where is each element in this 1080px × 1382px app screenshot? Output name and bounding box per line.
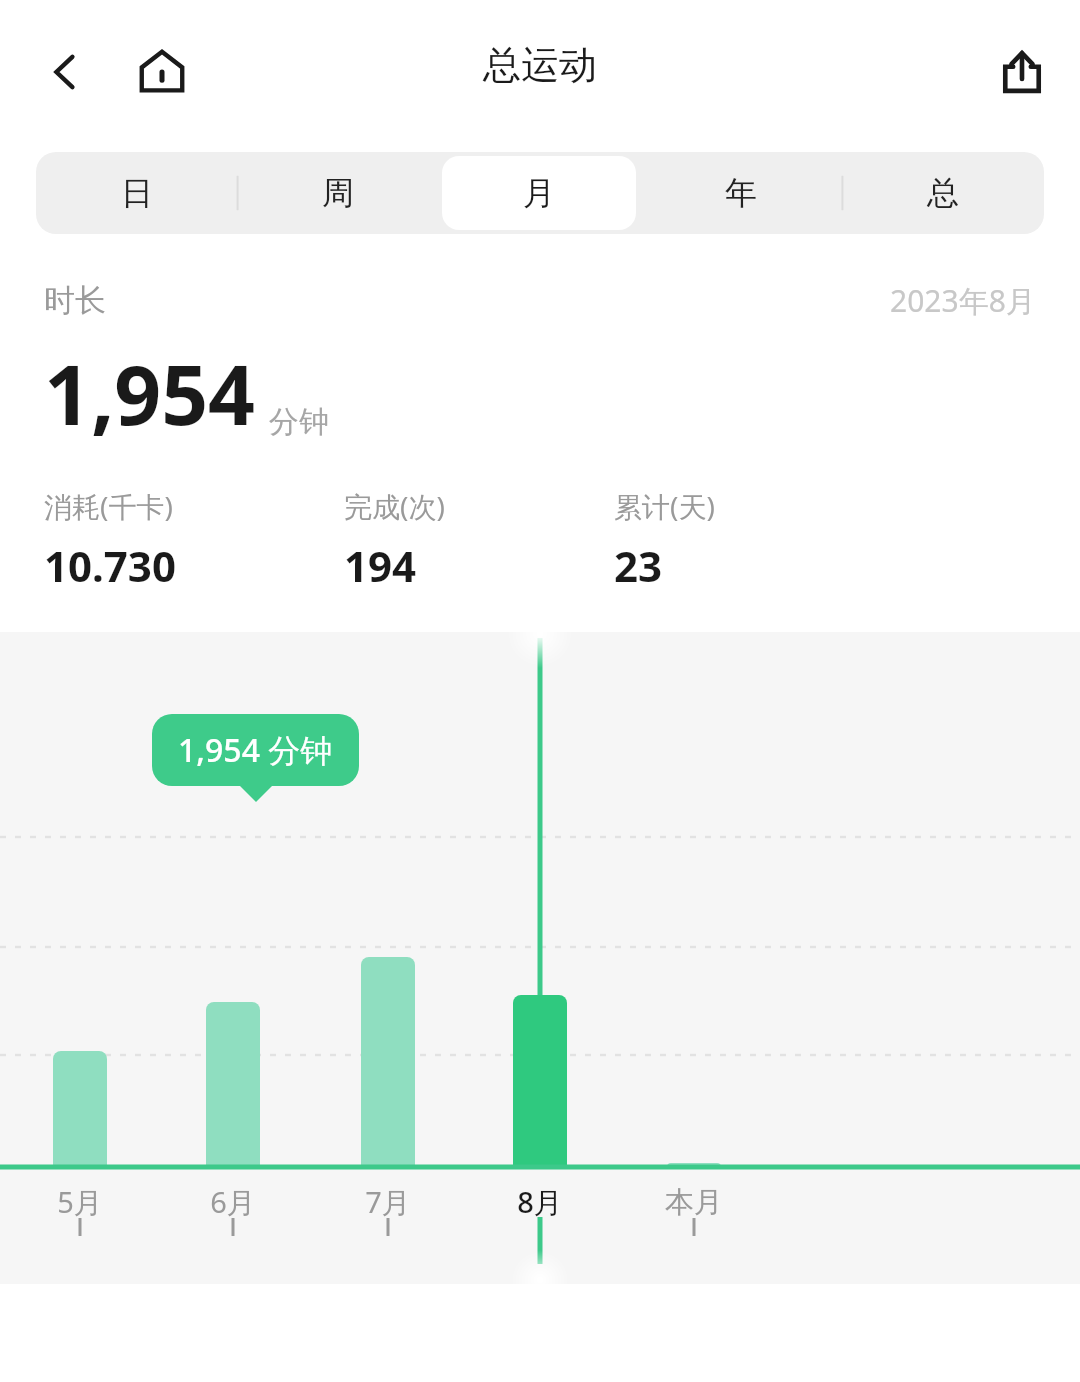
button[interactable]: 8月 [480, 1179, 600, 1225]
staticText: 周 [322, 173, 354, 213]
button[interactable]: Share [986, 36, 1058, 108]
staticText: 总 [927, 173, 959, 213]
staticText: 5月 [57, 1182, 103, 1222]
button[interactable]: 日 [40, 156, 233, 230]
button[interactable]: Back [30, 36, 102, 108]
staticText: 本月 [665, 1184, 723, 1221]
button[interactable]: Home [126, 36, 198, 108]
button[interactable]: 周 [241, 156, 434, 230]
button[interactable]: 1,954 分钟 [178, 728, 333, 772]
staticText: 1,954 [44, 337, 255, 449]
staticText: 2023年8月 [890, 280, 1036, 321]
staticText: 194 [344, 537, 417, 594]
staticText: 1,954 分钟 [178, 728, 333, 772]
button[interactable]: 本月 [634, 1179, 754, 1225]
button[interactable]: 5月 [20, 1179, 140, 1225]
staticText: 总运动 [483, 41, 597, 89]
button[interactable]: 月 [442, 156, 636, 230]
button[interactable]: 6月 [173, 1179, 293, 1225]
staticText: 月 [523, 173, 555, 213]
staticText: 6月 [210, 1182, 256, 1222]
staticText: 时长 [44, 281, 106, 320]
staticText: 7月 [365, 1182, 411, 1222]
staticText: 消耗(千卡) [44, 487, 173, 525]
staticText: 8月 [517, 1182, 563, 1222]
button[interactable]: 7月 [328, 1179, 448, 1225]
staticText: 日 [121, 173, 153, 213]
staticText: 完成(次) [344, 487, 445, 525]
staticText: 分钟 [269, 403, 329, 441]
button[interactable]: 总 [846, 156, 1040, 230]
staticText: 10.730 [44, 537, 176, 594]
staticText: 年 [725, 173, 757, 213]
button[interactable]: 年 [644, 156, 838, 230]
staticText: 23 [614, 537, 663, 594]
staticText: 累计(天) [614, 487, 715, 525]
